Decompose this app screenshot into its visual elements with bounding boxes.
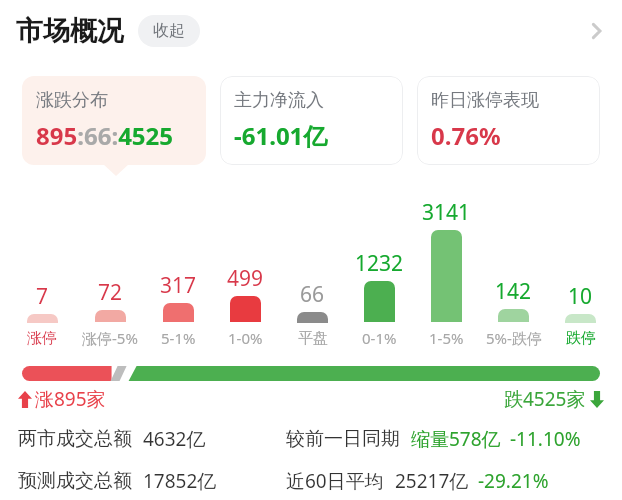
staticText: 17852亿	[143, 468, 217, 494]
staticText: 0-1%	[362, 328, 397, 348]
staticText: 跌停	[566, 329, 596, 348]
staticText: 66	[300, 280, 325, 309]
staticText: 3141	[422, 198, 471, 227]
staticText: 7	[36, 282, 49, 311]
staticText: -61.01亿	[234, 119, 328, 152]
staticText: 平盘	[298, 329, 328, 348]
staticText: 近60日平均	[286, 468, 384, 494]
button[interactable]: Open market overview	[574, 9, 618, 53]
staticText: -29.21%	[478, 468, 549, 494]
staticText: 317	[160, 271, 197, 300]
staticText: 0.76%	[431, 119, 501, 152]
staticText: 收起	[153, 21, 185, 41]
staticText: 两市成交总额	[18, 427, 132, 451]
staticText: 涨停	[27, 329, 57, 348]
staticText: 涨停-5%	[82, 328, 138, 348]
staticText: 142	[495, 277, 532, 306]
staticText: 较前一日同期	[286, 427, 400, 451]
staticText: 预测成交总额	[18, 469, 132, 493]
staticText: 5-1%	[161, 328, 196, 348]
staticText: 1-5%	[429, 328, 464, 348]
staticText: 25217亿	[395, 468, 469, 494]
staticText: 跌4525家	[504, 386, 586, 412]
staticText: 4632亿	[143, 426, 206, 452]
button[interactable]: 收起	[138, 15, 200, 47]
staticText: 市场概况	[16, 14, 124, 48]
button[interactable]: 涨跌分布	[22, 76, 206, 165]
staticText: 1-0%	[228, 328, 263, 348]
staticText: 499	[227, 264, 264, 293]
staticText: -11.10%	[510, 426, 581, 452]
button[interactable]: 主力净流入	[220, 76, 403, 165]
staticText: 72	[98, 278, 123, 307]
staticText: 1232	[355, 249, 404, 278]
staticText: 10	[568, 282, 593, 311]
button[interactable]: 昨日涨停表现	[417, 76, 600, 165]
staticText: 主力净流入	[234, 89, 324, 112]
staticText: 昨日涨停表现	[431, 89, 539, 112]
staticText: 895:66:4525	[36, 119, 174, 152]
staticText: 涨跌分布	[36, 89, 108, 112]
staticText: 缩量578亿	[411, 426, 501, 452]
staticText: 涨895家	[35, 386, 106, 412]
staticText: 5%-跌停	[486, 328, 542, 348]
